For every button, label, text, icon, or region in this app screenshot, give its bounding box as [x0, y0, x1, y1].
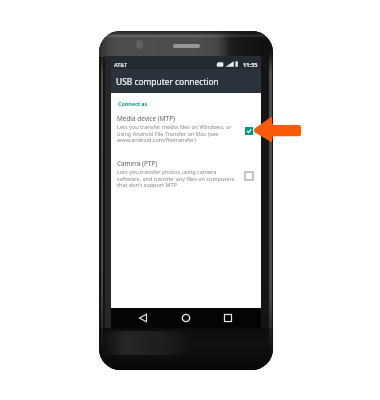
- button[interactable]: Home: [176, 308, 196, 328]
- staticText: Connect as: [118, 100, 148, 107]
- staticText: Lets you transfer media files on Windows…: [117, 123, 232, 130]
- button[interactable]: Back: [133, 308, 153, 328]
- staticText: USB computer connection: [116, 76, 219, 87]
- staticText: 11:35: [243, 61, 258, 69]
- staticText: Lets you transfer photos using camera: [117, 168, 217, 175]
- staticText: Media device (MTP): [117, 114, 175, 123]
- staticText: software, and transfer any files on comp…: [117, 175, 235, 182]
- staticText: using Android File Transfer on Mac (see: [117, 130, 219, 137]
- staticText: that don't support MTP: [117, 181, 177, 188]
- button[interactable]: Camera (PTP): [111, 159, 261, 195]
- button[interactable]: USB computer connection: [111, 69, 261, 93]
- button[interactable]: Media device (MTP): [111, 114, 261, 150]
- staticText: AT&T: [114, 61, 128, 68]
- staticText: Camera (PTP): [117, 159, 158, 168]
- button[interactable]: Recents: [218, 308, 238, 328]
- staticText: www.android.com/filetransfer): [117, 136, 197, 143]
